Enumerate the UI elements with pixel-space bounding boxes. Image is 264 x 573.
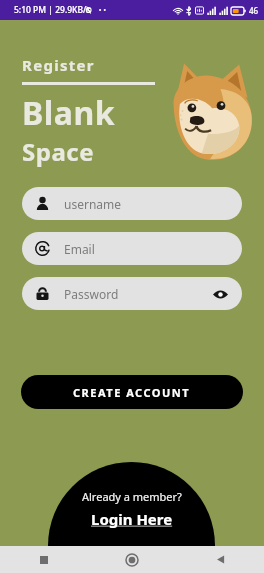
staticText: Space	[22, 135, 94, 168]
staticText: Email	[64, 241, 95, 257]
staticText: 46	[249, 5, 259, 16]
staticText: Login Here	[91, 509, 173, 529]
button[interactable]: Back	[176, 546, 264, 573]
staticText: Register	[22, 55, 95, 75]
button[interactable]: Email	[22, 232, 242, 265]
button[interactable]: Password	[22, 277, 242, 310]
button[interactable]: Already a member?	[48, 462, 215, 573]
staticText: Password	[64, 286, 119, 302]
staticText: CREATE ACCOUNT	[73, 385, 191, 400]
button[interactable]: Show password	[211, 285, 229, 303]
button[interactable]: Recents	[0, 546, 88, 573]
button[interactable]: Home	[88, 546, 176, 573]
staticText: username	[64, 196, 122, 212]
staticText: Blank	[22, 91, 116, 135]
staticText: 5:10 PM | 29.9KB/s	[14, 4, 91, 16]
staticText: Already a member?	[82, 489, 182, 504]
button[interactable]: CREATE ACCOUNT	[21, 375, 243, 409]
button[interactable]: username	[22, 187, 242, 220]
